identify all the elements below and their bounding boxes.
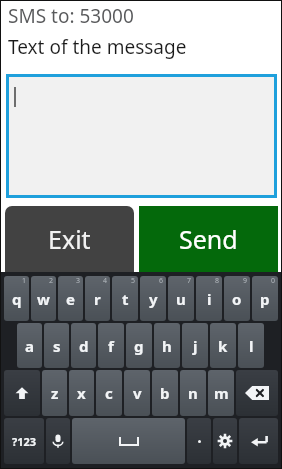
button[interactable]: Settings bbox=[213, 418, 237, 464]
staticText: p bbox=[260, 289, 270, 309]
staticText: q bbox=[12, 289, 22, 309]
staticText: g bbox=[134, 336, 144, 356]
button[interactable]: q bbox=[4, 276, 29, 321]
button[interactable]: j bbox=[182, 323, 208, 368]
staticText: l bbox=[249, 336, 254, 356]
button[interactable]: Shift bbox=[4, 370, 40, 416]
button[interactable]: b bbox=[152, 370, 178, 416]
staticText: z bbox=[51, 383, 59, 403]
button[interactable]: i bbox=[196, 276, 222, 321]
staticText: m bbox=[214, 383, 229, 403]
staticText: a bbox=[25, 336, 34, 356]
button[interactable]: n bbox=[180, 370, 206, 416]
button[interactable]: k bbox=[210, 323, 236, 368]
button[interactable]: e bbox=[58, 276, 83, 321]
button[interactable]: ?123 bbox=[4, 418, 44, 464]
button[interactable]: a bbox=[17, 323, 42, 368]
staticText: Text of the message bbox=[8, 34, 187, 60]
button[interactable]: Backspace bbox=[236, 370, 278, 416]
staticText: x bbox=[77, 383, 86, 403]
button[interactable]: m bbox=[208, 370, 234, 416]
button[interactable]: f bbox=[98, 323, 124, 368]
button[interactable]: Exit bbox=[5, 206, 134, 272]
button[interactable]: z bbox=[42, 370, 67, 416]
staticText: i bbox=[207, 289, 212, 309]
staticText: y bbox=[149, 289, 158, 309]
button[interactable]: Voice input bbox=[46, 418, 70, 464]
staticText: SMS to: 53000 bbox=[8, 3, 134, 29]
staticText: e bbox=[66, 289, 75, 309]
staticText: s bbox=[53, 336, 61, 356]
staticText: 0 bbox=[271, 276, 276, 286]
staticText: j bbox=[193, 336, 198, 356]
staticText: Exit bbox=[48, 222, 91, 256]
staticText: d bbox=[79, 336, 89, 356]
button[interactable]: t bbox=[112, 276, 138, 321]
button[interactable]: l bbox=[238, 323, 264, 368]
button[interactable]: g bbox=[126, 323, 152, 368]
button[interactable]: w bbox=[31, 276, 56, 321]
button[interactable]: Enter bbox=[239, 418, 278, 464]
staticText: u bbox=[176, 289, 186, 309]
staticText: h bbox=[162, 336, 172, 356]
staticText: w bbox=[37, 289, 50, 309]
staticText: Send bbox=[179, 222, 238, 256]
staticText: 4 bbox=[103, 276, 108, 286]
button[interactable]: o bbox=[224, 276, 250, 321]
staticText: v bbox=[133, 383, 142, 403]
button[interactable]: u bbox=[168, 276, 194, 321]
button[interactable]: x bbox=[69, 370, 94, 416]
staticText: k bbox=[218, 336, 228, 356]
button[interactable]: p bbox=[252, 276, 278, 321]
staticText: n bbox=[188, 383, 198, 403]
button[interactable]: h bbox=[154, 323, 180, 368]
staticText: 9 bbox=[243, 276, 248, 286]
button[interactable]: Space bbox=[72, 418, 185, 464]
staticText: o bbox=[232, 289, 242, 309]
button[interactable]: d bbox=[71, 323, 96, 368]
staticText: 8 bbox=[215, 276, 220, 286]
staticText: 5 bbox=[131, 276, 136, 286]
staticText: c bbox=[105, 383, 113, 403]
button[interactable]: c bbox=[96, 370, 122, 416]
button[interactable]: r bbox=[85, 276, 110, 321]
button[interactable]: Send bbox=[139, 206, 278, 272]
staticText: r bbox=[94, 289, 101, 309]
staticText: f bbox=[108, 336, 114, 356]
button[interactable]: s bbox=[44, 323, 69, 368]
staticText: 3 bbox=[76, 276, 81, 286]
button[interactable]: v bbox=[124, 370, 150, 416]
staticText: 7 bbox=[187, 276, 192, 286]
staticText: b bbox=[160, 383, 170, 403]
staticText: 1 bbox=[22, 276, 27, 286]
staticText: t bbox=[122, 289, 129, 309]
button[interactable]: y bbox=[140, 276, 166, 321]
staticText: 2 bbox=[49, 276, 54, 286]
staticText: 6 bbox=[159, 276, 164, 286]
staticText: ?123 bbox=[12, 434, 37, 449]
button[interactable]: Period bbox=[187, 418, 211, 464]
